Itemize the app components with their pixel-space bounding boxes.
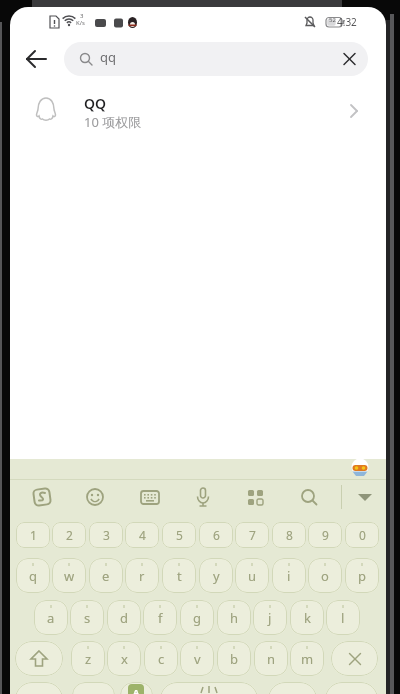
button[interactable]: b: [217, 641, 251, 676]
button[interactable]: s: [70, 600, 104, 635]
staticText: A: [133, 686, 140, 694]
button[interactable]: 符: [15, 682, 63, 694]
staticText: 4: [139, 527, 146, 543]
button[interactable]: t: [162, 558, 196, 593]
staticText: qq: [100, 48, 116, 66]
button[interactable]: [160, 682, 258, 694]
button[interactable]: g: [180, 600, 214, 635]
button[interactable]: [15, 641, 63, 676]
button[interactable]: l: [326, 600, 360, 635]
button[interactable]: 9: [308, 522, 342, 548]
button[interactable]: 4: [125, 522, 159, 548]
staticText: e: [102, 567, 110, 585]
staticText: 3: [103, 527, 110, 543]
staticText: i: [287, 567, 291, 585]
button[interactable]: [192, 486, 214, 508]
staticText: q: [29, 567, 37, 585]
staticText: c: [158, 650, 165, 668]
staticText: 5: [176, 527, 183, 543]
button[interactable]: 2: [52, 522, 86, 548]
button[interactable]: [139, 486, 161, 508]
button[interactable]: m: [290, 641, 324, 676]
staticText: m: [301, 650, 314, 668]
button[interactable]: z: [71, 641, 105, 676]
staticText: h: [230, 609, 239, 627]
button[interactable]: k: [290, 600, 324, 635]
button[interactable]: j: [253, 600, 287, 635]
staticText: u: [248, 567, 257, 585]
button[interactable]: 0: [345, 522, 379, 548]
button[interactable]: 3: [89, 522, 123, 548]
staticText: 9: [322, 527, 329, 543]
button[interactable]: 6: [199, 522, 233, 548]
staticText: g: [193, 609, 201, 627]
button[interactable]: y: [199, 558, 233, 593]
staticText: b: [230, 650, 238, 668]
button[interactable]: 发送: [325, 682, 378, 694]
button[interactable]: QQ: [10, 85, 386, 137]
button[interactable]: [84, 486, 106, 508]
button[interactable]: h: [217, 600, 251, 635]
button[interactable]: r: [125, 558, 159, 593]
staticText: l: [341, 609, 345, 627]
button[interactable]: q: [16, 558, 50, 593]
button[interactable]: f: [143, 600, 177, 635]
staticText: o: [321, 567, 329, 585]
staticText: n: [267, 650, 276, 668]
button[interactable]: qq: [64, 42, 368, 76]
staticText: t: [177, 567, 182, 585]
button[interactable]: e: [89, 558, 123, 593]
staticText: QQ: [84, 94, 107, 113]
button[interactable]: [331, 641, 378, 676]
staticText: 0: [359, 527, 366, 543]
button[interactable]: 1: [16, 522, 50, 548]
button[interactable]: 5: [162, 522, 196, 548]
staticText: 1: [30, 527, 37, 543]
button[interactable]: p: [345, 558, 379, 593]
button[interactable]: d: [107, 600, 141, 635]
staticText: 4:32: [337, 15, 357, 29]
staticText: x: [121, 650, 128, 668]
staticText: 6: [213, 527, 220, 543]
button[interactable]: u: [235, 558, 269, 593]
button[interactable]: x: [107, 641, 141, 676]
button[interactable]: n: [254, 641, 288, 676]
button[interactable]: a: [34, 600, 68, 635]
staticText: d: [120, 609, 128, 627]
button[interactable]: 123: [72, 682, 115, 694]
staticText: r: [139, 567, 145, 585]
button[interactable]: [354, 486, 376, 508]
staticText: y: [213, 567, 220, 585]
staticText: K/s: [76, 19, 85, 27]
button[interactable]: v: [180, 641, 214, 676]
button[interactable]: [120, 682, 153, 694]
button[interactable]: o: [308, 558, 342, 593]
staticText: 3: [80, 12, 84, 20]
staticText: 52: [329, 16, 336, 24]
button[interactable]: w: [52, 558, 86, 593]
staticText: s: [84, 609, 91, 627]
button[interactable]: [298, 486, 320, 508]
staticText: w: [64, 567, 75, 585]
staticText: 10 项权限: [84, 113, 142, 131]
button[interactable]: 7: [235, 522, 269, 548]
staticText: f: [158, 609, 163, 627]
staticText: k: [304, 609, 311, 627]
button[interactable]: [244, 486, 266, 508]
staticText: 7: [249, 527, 256, 543]
staticText: 2: [66, 527, 73, 543]
staticText: a: [47, 609, 55, 627]
button[interactable]: c: [144, 641, 178, 676]
staticText: v: [194, 650, 201, 668]
staticText: 8: [286, 527, 293, 543]
button[interactable]: i: [272, 558, 306, 593]
button[interactable]: 中/英: [268, 682, 317, 694]
button[interactable]: [30, 486, 54, 508]
button[interactable]: [24, 46, 50, 72]
staticText: z: [85, 650, 92, 668]
button[interactable]: 8: [272, 522, 306, 548]
